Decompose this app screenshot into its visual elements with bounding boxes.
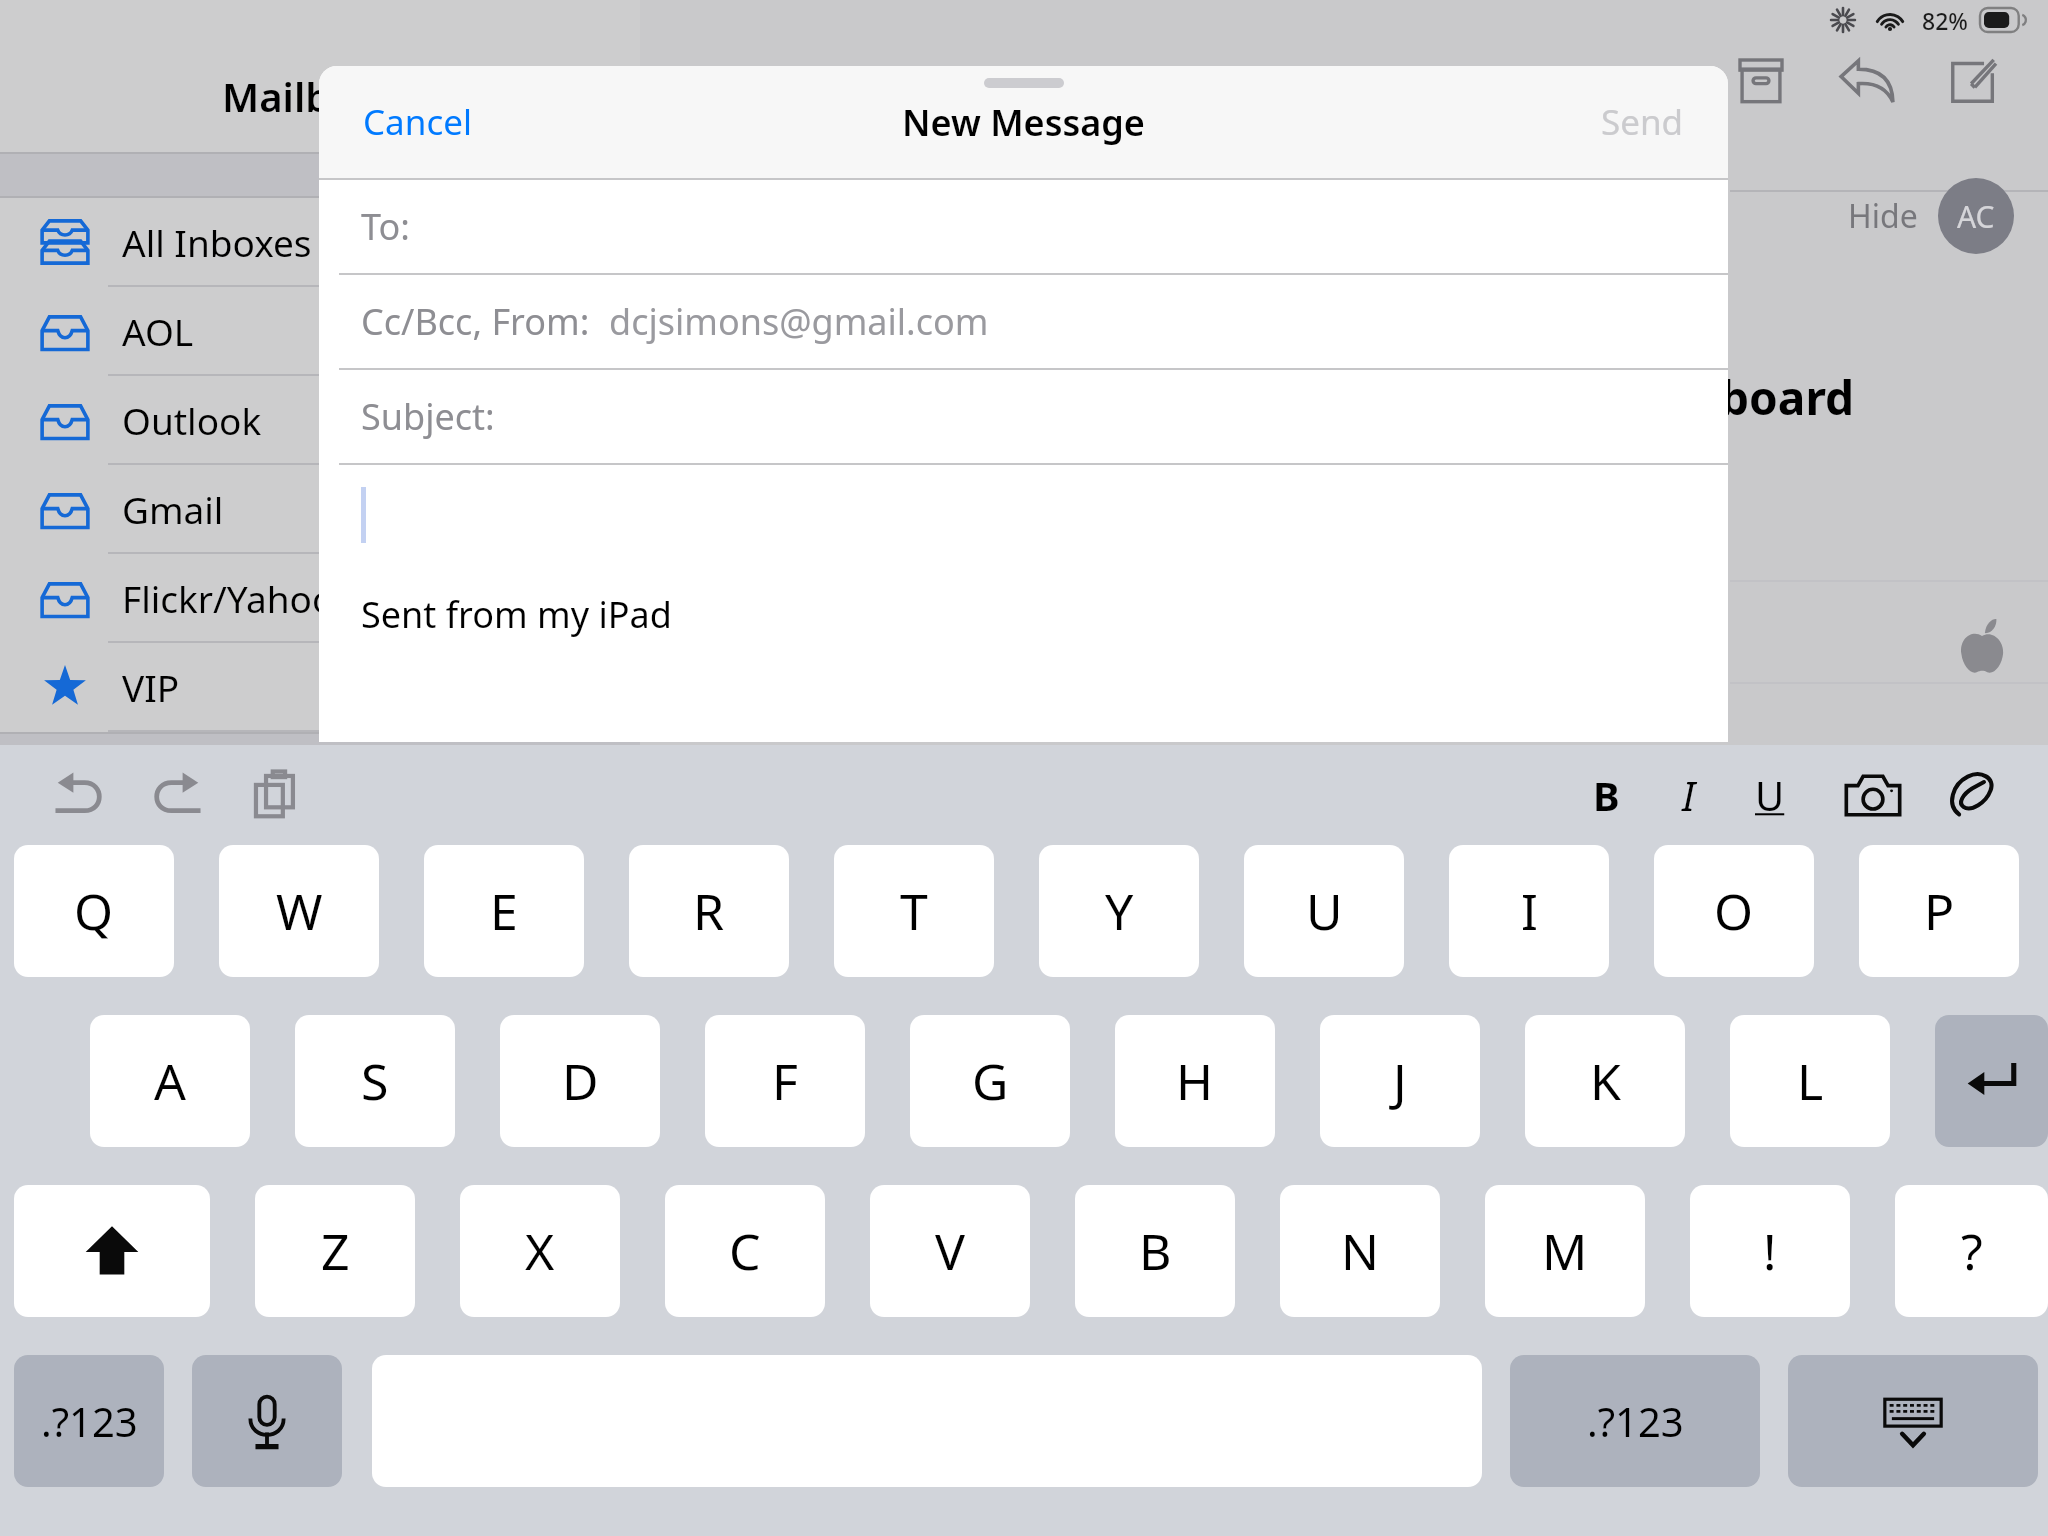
button[interactable]: Dismiss keyboard	[1788, 1355, 2038, 1487]
button[interactable]: Redo	[140, 758, 214, 832]
button[interactable]: S	[295, 1015, 455, 1147]
button[interactable]: Outlook	[0, 376, 640, 465]
button[interactable]: VIP	[0, 643, 640, 732]
staticText: I	[1682, 768, 1695, 822]
staticText: VIP	[122, 662, 180, 712]
staticText: L	[1797, 1047, 1824, 1115]
staticText: S	[361, 1047, 389, 1115]
button[interactable]: M	[1485, 1185, 1645, 1317]
button[interactable]: T	[834, 845, 994, 977]
button[interactable]: U	[1244, 845, 1404, 977]
button[interactable]: G	[910, 1015, 1070, 1147]
staticText: Flickr/Yahoo g	[122, 573, 367, 623]
button[interactable]: .?123	[1510, 1355, 1760, 1487]
staticText: R	[693, 877, 725, 945]
staticText: V	[935, 1217, 965, 1285]
staticText: D	[562, 1047, 599, 1115]
button[interactable]: Send	[1585, 84, 1700, 160]
button[interactable]: Flickr/Yahoo g	[0, 554, 640, 643]
button[interactable]: Cancel	[347, 84, 488, 160]
button[interactable]: All Inboxes	[0, 198, 640, 287]
button[interactable]: V	[870, 1185, 1030, 1317]
button[interactable]: H	[1115, 1015, 1275, 1147]
button[interactable]: Undo	[42, 758, 116, 832]
button[interactable]: Y	[1039, 845, 1199, 977]
staticText: A	[154, 1047, 186, 1115]
button[interactable]: C	[665, 1185, 825, 1317]
button[interactable]: B	[1075, 1185, 1235, 1317]
staticText: E	[490, 877, 518, 945]
button[interactable]: R	[629, 845, 789, 977]
button[interactable]: F	[705, 1015, 865, 1147]
button[interactable]: Q	[14, 845, 174, 977]
button[interactable]: Insert photo	[1836, 758, 1910, 832]
button[interactable]: J	[1320, 1015, 1480, 1147]
staticText: All Inboxes	[122, 217, 312, 267]
staticText: Y	[1105, 877, 1134, 945]
staticText: ?	[1961, 1217, 1983, 1285]
staticText: J	[1393, 1047, 1407, 1115]
staticText: board	[1720, 366, 1855, 429]
button[interactable]: Archive	[1726, 46, 1796, 116]
button[interactable]: N	[1280, 1185, 1440, 1317]
staticText: Send	[1601, 98, 1684, 146]
staticText: AC	[1957, 196, 1995, 237]
staticText: Cc/Bcc, From:	[361, 297, 599, 346]
staticText: O	[1714, 877, 1754, 945]
staticText: F	[772, 1047, 798, 1115]
button[interactable]: .?123	[14, 1355, 164, 1487]
staticText: M	[1542, 1217, 1588, 1285]
staticText: AOL	[36, 736, 90, 773]
button[interactable]: A	[90, 1015, 250, 1147]
button[interactable]: I	[1449, 845, 1609, 977]
button[interactable]: Dictation	[192, 1355, 342, 1487]
staticText: .?123	[41, 1394, 138, 1448]
button[interactable]: Return	[1935, 1015, 2048, 1147]
button[interactable]: Reply	[1832, 46, 1902, 116]
staticText: C	[729, 1217, 761, 1285]
staticText: Outlook	[122, 395, 262, 445]
button[interactable]: P	[1859, 845, 2019, 977]
button[interactable]: Cc/Bcc, From:	[319, 275, 1728, 370]
staticText: .?123	[1587, 1394, 1684, 1448]
staticText: New Message	[902, 98, 1145, 147]
staticText: P	[1924, 877, 1955, 945]
staticText: AOL	[122, 306, 194, 356]
button[interactable]: L	[1730, 1015, 1890, 1147]
button[interactable]: Gmail	[0, 465, 640, 554]
staticText: Gmail	[122, 484, 224, 534]
button[interactable]: Shift	[14, 1185, 210, 1317]
button[interactable]: ?	[1895, 1185, 2048, 1317]
staticText: Hide	[1848, 194, 1918, 238]
button[interactable]: Sent from my iPad	[319, 465, 1728, 742]
staticText: U	[1755, 768, 1785, 822]
staticText: B	[1593, 768, 1620, 822]
button[interactable]: To:	[319, 180, 1728, 275]
button[interactable]: Attach file	[1934, 758, 2008, 832]
button[interactable]: U	[1738, 763, 1802, 827]
staticText: W	[276, 877, 323, 945]
button[interactable]: AC	[1938, 178, 2014, 254]
staticText: B	[1139, 1217, 1172, 1285]
button[interactable]: Compose	[1938, 46, 2008, 116]
button[interactable]: !	[1690, 1185, 1850, 1317]
button[interactable]: Paste	[238, 758, 312, 832]
button[interactable]: D	[500, 1015, 660, 1147]
button[interactable]: I	[1656, 763, 1720, 827]
button[interactable]: B	[1574, 763, 1638, 827]
button[interactable]: Hide	[1838, 184, 1928, 248]
button[interactable]: Z	[255, 1185, 415, 1317]
button[interactable]: AOL	[0, 287, 640, 376]
button[interactable]: O	[1654, 845, 1814, 977]
staticText: X	[525, 1217, 555, 1285]
button[interactable]: K	[1525, 1015, 1685, 1147]
button[interactable]: Subject:	[319, 370, 1728, 465]
button[interactable]: E	[424, 845, 584, 977]
staticText: Cancel	[363, 98, 472, 146]
button[interactable]: W	[219, 845, 379, 977]
button[interactable]: X	[460, 1185, 620, 1317]
staticText: I	[1521, 877, 1538, 945]
